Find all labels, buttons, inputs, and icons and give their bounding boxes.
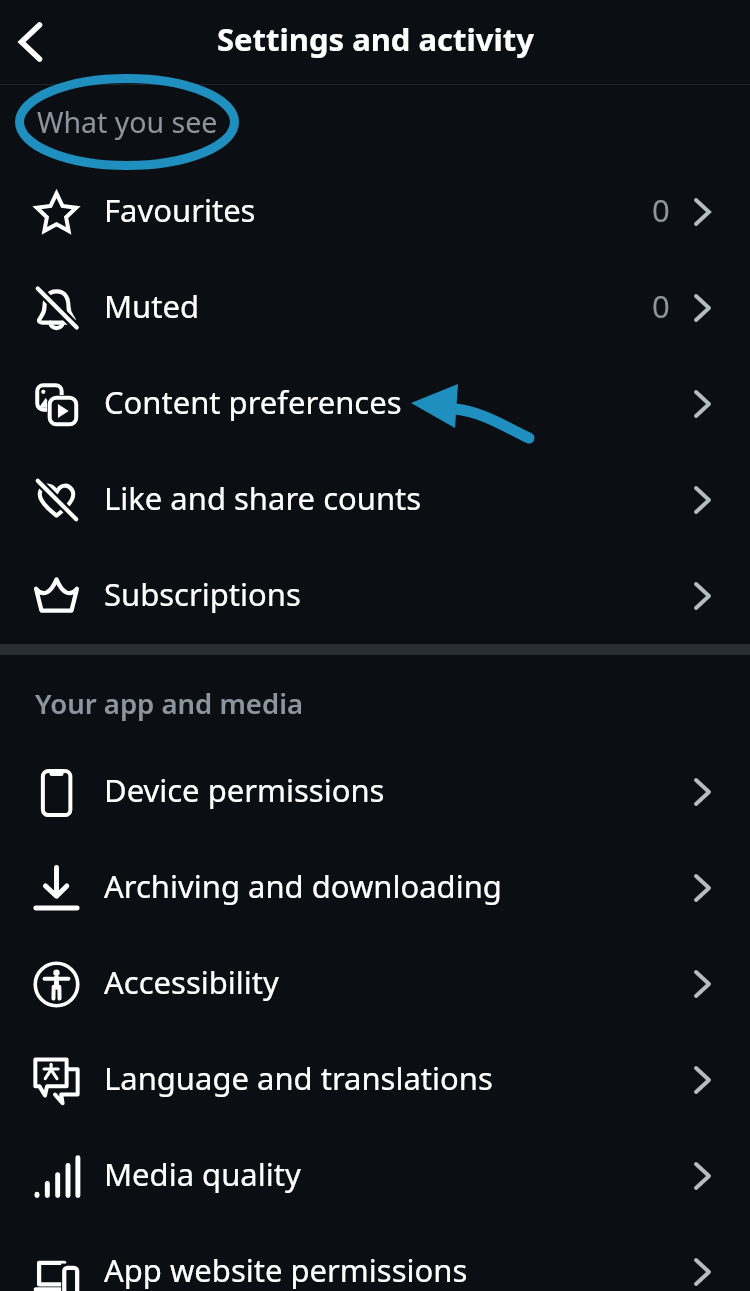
staticText: Like and share counts [104, 477, 660, 519]
button[interactable]: Accessibility [0, 936, 750, 1032]
staticText: Favourites [104, 189, 642, 231]
button[interactable]: Media quality [0, 1128, 750, 1224]
staticText: Settings and activity [217, 18, 534, 60]
staticText: Language and translations [104, 1057, 660, 1099]
staticText: Archiving and downloading [104, 865, 660, 907]
staticText: Accessibility [104, 961, 660, 1003]
staticText: Media quality [104, 1153, 660, 1195]
button[interactable]: Language and translations [0, 1032, 750, 1128]
button[interactable]: Like and share counts [0, 452, 750, 548]
staticText: What you see [37, 103, 218, 142]
staticText: Content preferences [104, 381, 660, 423]
staticText: Muted [104, 285, 642, 327]
button[interactable]: Muted [0, 260, 750, 356]
staticText: App website permissions [104, 1249, 660, 1291]
button[interactable]: Device permissions [0, 744, 750, 840]
staticText: 0 [652, 189, 670, 231]
staticText: Your app and media [35, 685, 304, 722]
button[interactable]: Content preferences [0, 356, 750, 452]
button[interactable]: Archiving and downloading [0, 840, 750, 936]
button[interactable]: Back [2, 13, 60, 71]
button[interactable]: Subscriptions [0, 548, 750, 644]
button[interactable]: App website permissions [0, 1224, 750, 1291]
button[interactable]: Favourites [0, 164, 750, 260]
staticText: 0 [652, 285, 670, 327]
staticText: Device permissions [104, 769, 660, 811]
staticText: Subscriptions [104, 573, 660, 615]
